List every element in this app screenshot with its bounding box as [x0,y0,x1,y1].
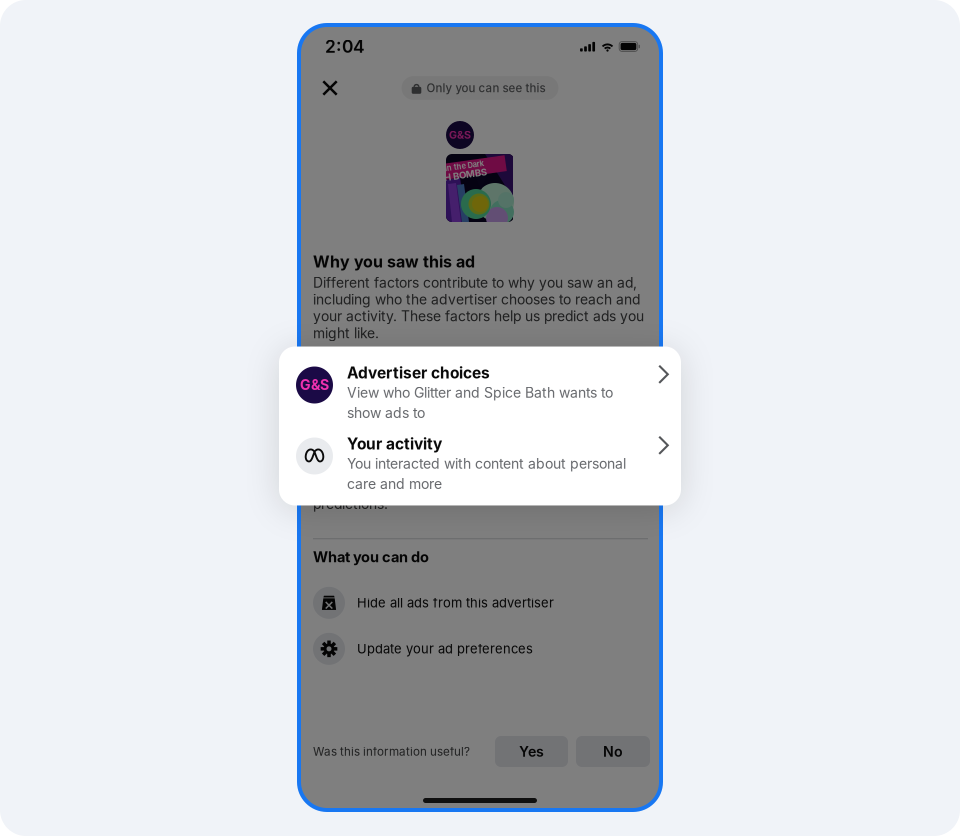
staticText: G&S [449,129,471,141]
staticText: View who Glitter and Spice Bath wants to… [347,384,613,421]
button[interactable]: No [576,736,650,767]
staticText: Only you can see this [426,81,545,95]
button[interactable]: Yes [495,736,568,767]
button[interactable]: Close [315,73,345,103]
button[interactable]: Update your ad preferences [299,626,661,672]
button[interactable]: G&S [279,346,681,427]
staticText: Why you saw this ad [313,252,475,271]
staticText: Ads are shown to people based on what th… [313,344,648,512]
staticText: Update your ad preferences [357,641,533,657]
staticText: Yes [519,743,544,760]
staticText: You interacted with content about person… [347,455,626,492]
staticText: w in the Dark [437,160,484,169]
staticText: Advertiser choices [347,363,490,382]
staticText: Your activity [347,434,442,453]
staticText: TH BOMBS [437,168,486,180]
staticText: Was this information useful? [313,744,470,758]
staticText: 2:04 [325,36,365,57]
button[interactable]: Hide all ads from this advertiser [299,580,661,626]
staticText: G&S [300,376,329,393]
staticText: No [603,743,623,760]
staticText: Different factors contribute to why you … [313,274,644,341]
staticText: Hide all ads from this advertiser [357,595,554,611]
staticText: What you can do [313,548,429,566]
button[interactable]: Your activity [279,427,681,505]
